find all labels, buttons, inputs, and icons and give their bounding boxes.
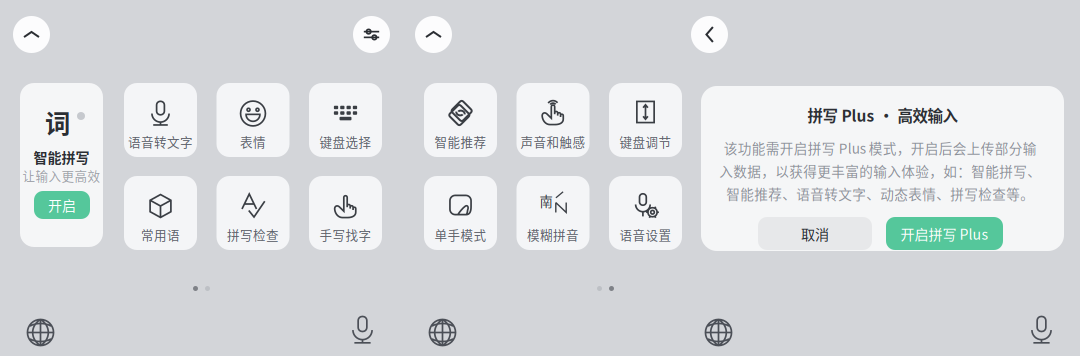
button[interactable]: 语音设置 — [609, 176, 682, 250]
staticText: 让输入更高效 — [22, 166, 100, 184]
staticText: 智能拼写 — [33, 147, 89, 167]
staticText: 单手模式 — [434, 225, 486, 243]
staticText: 拼写检查 — [227, 225, 279, 243]
staticText: 键盘调节 — [619, 132, 671, 150]
button[interactable]: Switch language — [421, 312, 464, 353]
staticText: 模糊拼音 — [527, 225, 579, 243]
button[interactable]: Switch language — [19, 312, 62, 353]
staticText: 智能推荐 — [434, 132, 486, 150]
staticText: 手写找字 — [319, 225, 371, 243]
staticText: 南 — [539, 191, 552, 210]
button[interactable]: Voice input — [1020, 309, 1063, 350]
button[interactable]: 键盘选择 — [309, 83, 382, 157]
staticText: 表情 — [240, 132, 266, 150]
button[interactable]: Collapse keyboard panel — [13, 16, 50, 53]
staticText: 语音转文字 — [128, 132, 193, 150]
staticText: 开启拼写 Plus — [900, 223, 988, 244]
button[interactable]: Voice input — [341, 309, 384, 350]
button[interactable]: Keyboard settings — [353, 16, 390, 53]
button[interactable]: 键盘调节 — [609, 83, 682, 157]
staticText: 开启 — [48, 195, 76, 215]
button[interactable]: 常用语 — [124, 176, 197, 250]
button[interactable]: 语音转文字 — [124, 83, 197, 157]
staticText: 拼写 Plus · 高效输入 — [807, 104, 957, 126]
button[interactable]: 单手模式 — [424, 176, 497, 250]
staticText: 键盘选择 — [319, 132, 371, 150]
button[interactable]: Switch language — [697, 312, 740, 353]
button[interactable]: 声音和触感 — [516, 83, 589, 157]
button[interactable]: 南 — [516, 176, 589, 250]
button[interactable]: 智能推荐 — [424, 83, 497, 157]
button[interactable]: 取消 — [758, 217, 872, 250]
staticText: 取消 — [801, 223, 829, 244]
button[interactable]: 开启拼写 Plus — [886, 217, 1003, 250]
button[interactable]: Back — [691, 16, 728, 53]
button[interactable]: 拼写检查 — [216, 176, 289, 250]
staticText: 词 — [45, 104, 70, 140]
staticText: 语音设置 — [619, 225, 671, 243]
button[interactable]: 手写找字 — [309, 176, 382, 250]
staticText: 声音和触感 — [520, 132, 585, 150]
staticText: 该功能需开启拼写 Plus 模式，开启后会上传部分输入数据，以获得更丰富的输入体… — [719, 138, 1041, 203]
button[interactable]: 表情 — [216, 83, 289, 157]
button[interactable]: Collapse keyboard panel — [415, 16, 452, 53]
staticText: 常用语 — [141, 225, 180, 243]
button[interactable]: 词 — [20, 83, 103, 247]
